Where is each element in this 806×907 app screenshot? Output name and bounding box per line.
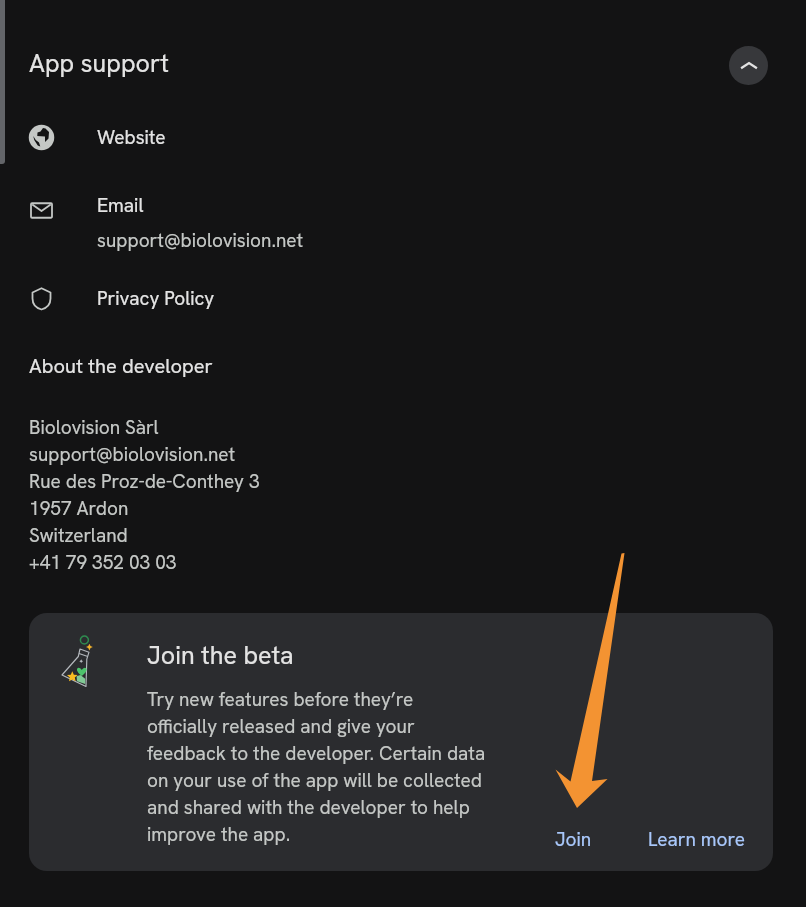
staticText: Try new features before they’re official… bbox=[147, 687, 487, 847]
staticText: Email bbox=[97, 193, 144, 218]
button[interactable]: Join bbox=[541, 818, 606, 861]
staticText: App support bbox=[29, 47, 169, 80]
button[interactable]: Collapse bbox=[729, 46, 768, 85]
staticText: Website bbox=[97, 125, 166, 150]
button[interactable]: Learn more bbox=[634, 818, 759, 861]
staticText: Biolovision Sàrl support@biolovision.net… bbox=[29, 415, 260, 575]
staticText: support@biolovision.net bbox=[97, 228, 304, 253]
staticText: Privacy Policy bbox=[97, 286, 215, 311]
staticText: Join the beta bbox=[147, 639, 294, 672]
button[interactable]: Email bbox=[0, 182, 806, 264]
staticText: Join bbox=[555, 827, 592, 852]
button[interactable]: Privacy Policy bbox=[0, 275, 806, 321]
button[interactable]: Website bbox=[0, 114, 806, 160]
staticText: Learn more bbox=[648, 827, 745, 852]
staticText: About the developer bbox=[29, 353, 213, 379]
